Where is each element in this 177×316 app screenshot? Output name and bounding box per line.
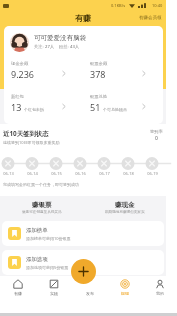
staticText: 添加榜单可获得10份银票 [26, 236, 71, 241]
staticText: 关注: [34, 44, 45, 50]
staticText: 添加榜单 [26, 227, 48, 234]
staticText: 51 [90, 101, 101, 113]
staticText: 06-17 [99, 171, 110, 176]
button[interactable]: 提现 [107, 276, 142, 299]
button[interactable]: 赚银票 [0, 199, 83, 217]
staticText: 06-13 [3, 171, 14, 176]
staticText: 有赚 [75, 13, 91, 23]
staticText: 0 [155, 135, 158, 142]
button[interactable]: 银票兑换 [83, 87, 163, 120]
staticText: 新红包 [11, 94, 24, 99]
staticText: 签到率 [150, 129, 163, 134]
staticText: 06-14 [27, 171, 38, 176]
button[interactable]: 银票余额 [83, 54, 163, 87]
staticText: 赚现金 [115, 201, 135, 209]
staticText: 27人 [45, 44, 54, 50]
staticText: 06-18 [123, 171, 134, 176]
staticText: 10:40 [152, 3, 163, 8]
staticText: 有赚会员领 [139, 15, 162, 21]
staticText: 银票兑换 [90, 94, 108, 99]
button[interactable]: 我的 [142, 276, 177, 299]
button[interactable]: 添加榜单 [2, 221, 164, 246]
button[interactable]: 有赚会员领 [135, 13, 166, 23]
staticText: 添加选项 [26, 256, 48, 263]
staticText: 0.1KB/s [111, 3, 126, 8]
staticText: 发布 [86, 291, 94, 296]
button[interactable]: 有赚 [0, 276, 36, 299]
staticText: 06-16 [75, 171, 86, 176]
button[interactable]: 发布 [71, 259, 96, 284]
staticText: 13 [11, 101, 22, 113]
staticText: 完成填写金的红票一个任务，即可签到成功 [3, 182, 79, 187]
button[interactable]: 赚现金 [83, 199, 166, 217]
staticText: 06-19 [147, 171, 158, 176]
staticText: 添加选项可获得5份银票 [26, 265, 69, 270]
staticText: 个可兑换物品 [103, 107, 127, 112]
staticText: 9.236 [11, 68, 35, 80]
button[interactable]: 实物 [36, 276, 72, 299]
staticText: 现金余额 [11, 61, 29, 66]
button[interactable]: 现金余额 [4, 54, 83, 87]
staticText: 实物 [50, 291, 58, 296]
staticText: 06-15 [51, 171, 62, 176]
staticText: 近10天签到状态 [3, 129, 49, 138]
staticText: 个红包未拆 [24, 107, 44, 112]
button[interactable]: 添加选项 [2, 250, 164, 275]
staticText: 赚银票 [32, 201, 52, 209]
button[interactable]: 头像 [10, 33, 29, 52]
staticText: 刷刷随地有赚哪但友家实 [105, 210, 145, 215]
staticText: 43人 [70, 44, 79, 50]
staticText: 粉丝: [59, 44, 70, 50]
staticText: 有赚 [14, 291, 22, 296]
staticText: 可可爱爱没有脑袋 [34, 34, 86, 42]
staticText: 做事可在销赢至从得买品 [22, 210, 62, 215]
staticText: 连续签到10日即可领取多重奖励 [3, 140, 60, 145]
staticText: 银票余额 [90, 61, 108, 66]
staticText: 378 [90, 68, 106, 80]
button[interactable]: 发布 [72, 276, 107, 299]
staticText: 我的 [156, 291, 164, 296]
staticText: 提现 [121, 291, 129, 296]
button[interactable]: 新红包 [4, 87, 83, 120]
